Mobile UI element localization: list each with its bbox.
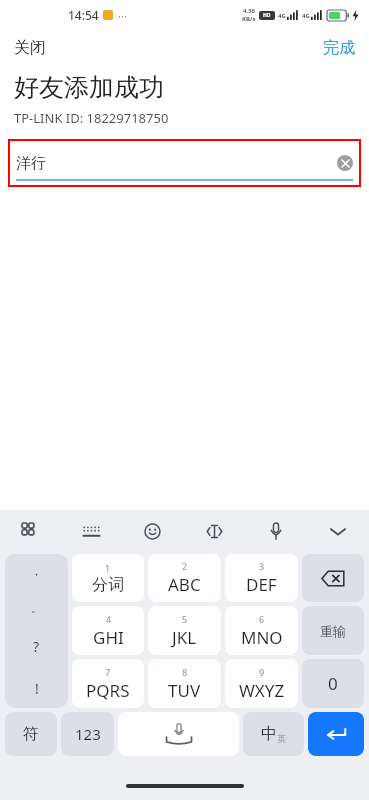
button[interactable]: 3 <box>225 554 298 602</box>
staticText: 4 <box>106 613 112 625</box>
staticText: TUV <box>168 679 201 702</box>
button[interactable]: Enter <box>308 712 364 756</box>
staticText: WXYZ <box>239 679 285 702</box>
staticText: KB/s <box>242 15 256 23</box>
button[interactable]: Emoji <box>122 510 183 552</box>
button[interactable]: 符 <box>5 712 57 756</box>
button[interactable]: 2 <box>148 554 221 602</box>
button[interactable]: 9 <box>225 659 298 708</box>
button[interactable]: Text edit <box>183 510 245 552</box>
button[interactable]: Keyboard layouts <box>0 510 61 552</box>
button[interactable]: 1 <box>72 554 144 602</box>
staticText: HD <box>263 12 271 19</box>
button[interactable]: Clear text <box>337 155 353 171</box>
staticText: 完成 <box>323 38 355 58</box>
staticText: ! <box>35 679 39 698</box>
button[interactable]: 重输 <box>302 606 364 655</box>
button[interactable]: 8 <box>148 659 221 708</box>
button[interactable]: 完成 <box>309 32 369 64</box>
button[interactable]: 关闭 <box>0 32 60 64</box>
staticText: 1 <box>105 562 111 574</box>
staticText: 中 <box>261 724 277 744</box>
staticText: 6 <box>259 613 265 625</box>
staticText: 。 <box>31 601 42 615</box>
other: Enter <box>325 726 347 742</box>
staticText: MNO <box>241 626 283 649</box>
staticText: 5 <box>182 613 188 625</box>
staticText: 123 <box>75 724 101 744</box>
staticText: ··· <box>118 8 127 23</box>
staticText: 4G <box>278 12 286 20</box>
button[interactable]: 6 <box>225 606 298 655</box>
button[interactable]: 7 <box>72 659 144 708</box>
staticText: JKL <box>172 626 197 649</box>
button[interactable]: Voice input <box>245 510 307 552</box>
button[interactable]: 4 <box>72 606 144 655</box>
staticText: 3 <box>259 560 265 572</box>
staticText: 4.36 <box>243 7 255 15</box>
staticText: 7 <box>105 666 111 678</box>
staticText: 洋行 <box>16 154 46 173</box>
staticText: 2 <box>182 560 188 572</box>
button[interactable]: 中 <box>243 712 304 756</box>
staticText: 好友添加成功 <box>14 72 164 103</box>
button[interactable]: Backspace <box>302 554 364 602</box>
staticText: 符 <box>23 724 39 744</box>
button[interactable]: 0 <box>302 659 364 708</box>
staticText: DEF <box>246 573 277 596</box>
staticText: ， <box>31 564 42 578</box>
staticText: 4G <box>302 12 310 20</box>
staticText: ? <box>33 637 40 656</box>
staticText: 14:54 <box>68 7 99 23</box>
staticText: 关闭 <box>14 38 46 58</box>
other: Backspace <box>321 570 345 587</box>
staticText: ABC <box>168 573 201 596</box>
button[interactable]: Keyboard <box>61 510 122 552</box>
other: Space, voice input <box>155 721 203 747</box>
button[interactable]: 123 <box>61 712 114 756</box>
staticText: TP-LINK ID: 18229718750 <box>14 109 169 127</box>
button[interactable]: 5 <box>148 606 221 655</box>
staticText: PQRS <box>86 679 130 702</box>
staticText: 0 <box>328 672 338 695</box>
staticText: 8 <box>182 666 188 678</box>
button[interactable]: Space, voice input <box>118 712 239 756</box>
button[interactable]: Hide keyboard <box>307 510 369 552</box>
button[interactable]: ， <box>5 554 68 708</box>
staticText: 英 <box>277 733 286 744</box>
staticText: 分词 <box>92 575 124 595</box>
staticText: 重输 <box>320 623 346 639</box>
staticText: GHI <box>93 626 124 649</box>
staticText: 9 <box>259 666 265 678</box>
